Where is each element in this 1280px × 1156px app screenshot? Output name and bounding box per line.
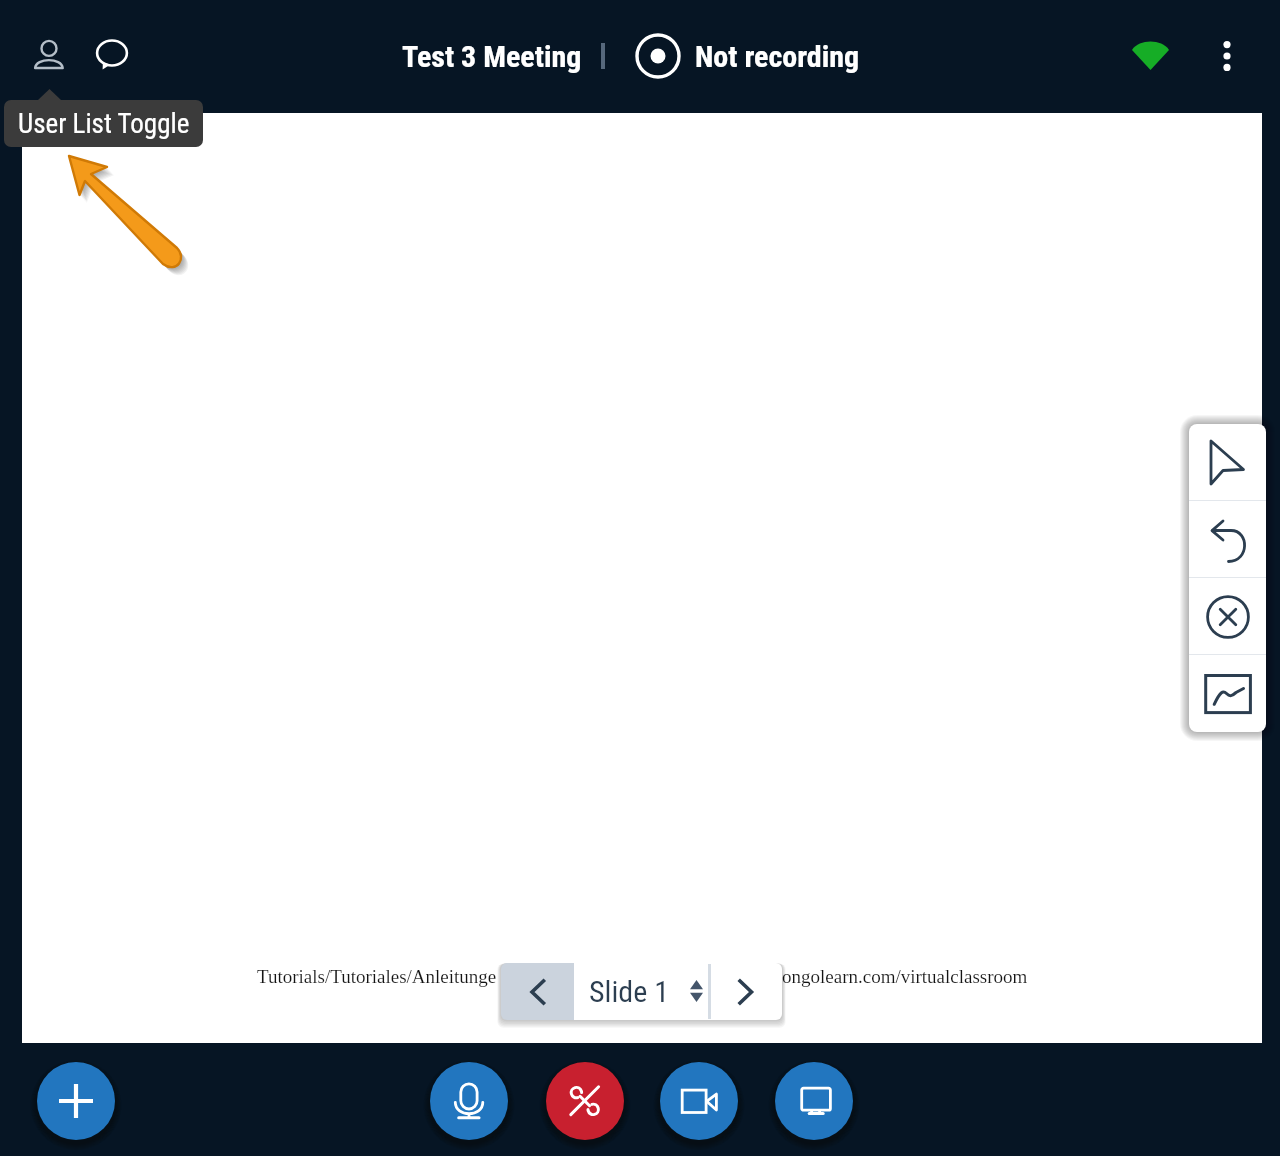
- button[interactable]: Undo annotation: [1189, 501, 1266, 578]
- staticText: Not recording: [695, 39, 860, 74]
- staticText: Tutorials/Tutoriales/Anleitunge: [257, 966, 497, 987]
- button[interactable]: Not recording: [635, 33, 860, 79]
- staticText: Test 3 Meeting: [402, 39, 582, 74]
- button[interactable]: Next slide: [709, 963, 782, 1020]
- staticText: ongolearn.com/virtualclassroom: [782, 966, 1028, 987]
- button[interactable]: User List Toggle: [30, 34, 72, 76]
- button[interactable]: Pointer tool: [1189, 424, 1266, 501]
- button[interactable]: Clear all annotations: [1189, 578, 1266, 655]
- staticText: Slide 1: [589, 974, 669, 1009]
- button[interactable]: Share your screen: [775, 1062, 853, 1140]
- button[interactable]: Select slide: [574, 963, 709, 1020]
- button[interactable]: Previous slide: [501, 963, 574, 1020]
- button[interactable]: Actions: [37, 1062, 115, 1140]
- button[interactable]: Mute: [430, 1062, 508, 1140]
- button[interactable]: Share webcam: [660, 1062, 738, 1140]
- button[interactable]: Connection status: [1125, 30, 1175, 80]
- staticText: User List Toggle: [18, 108, 190, 140]
- button[interactable]: Turn multi-user whiteboard on: [1189, 655, 1266, 732]
- button[interactable]: Leave audio: [546, 1062, 624, 1140]
- button[interactable]: Options: [1202, 31, 1252, 81]
- button[interactable]: Public Chat: [92, 35, 134, 77]
